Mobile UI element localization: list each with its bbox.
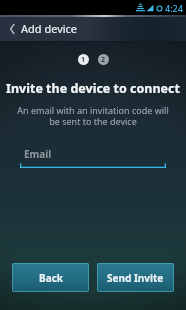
staticText: An email with an invitation code will be… bbox=[10, 104, 176, 128]
button[interactable]: Step 1 bbox=[78, 54, 89, 65]
staticText: Email bbox=[24, 147, 52, 161]
button[interactable]: Back bbox=[12, 263, 89, 292]
staticText: Back bbox=[39, 271, 63, 285]
button[interactable]: Step 2 bbox=[98, 54, 109, 65]
staticText: 4:24 bbox=[165, 2, 183, 14]
staticText: 2 bbox=[101, 55, 106, 65]
button[interactable]: Email bbox=[20, 146, 166, 168]
staticText: Add device bbox=[21, 21, 78, 36]
button[interactable]: Send Invite bbox=[97, 263, 174, 292]
button[interactable]: Add device, navigate up bbox=[7, 18, 81, 39]
staticText: Invite the device to connect bbox=[0, 80, 186, 97]
staticText: 1 bbox=[81, 55, 86, 65]
staticText: Send Invite bbox=[107, 271, 164, 285]
